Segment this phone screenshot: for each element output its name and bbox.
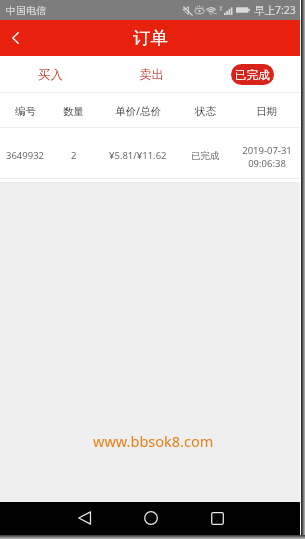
staticText: 买入 [38, 67, 63, 83]
staticText: 早上7:23 [254, 3, 296, 17]
button[interactable]: Back [0, 20, 30, 56]
button[interactable]: Home [137, 504, 165, 532]
button[interactable]: 3649932 [0, 128, 300, 182]
staticText: www.bbsok8.com [93, 431, 214, 451]
staticText: ¥5.81/¥11.62 [109, 149, 167, 162]
staticText: 2019-07-31 09:06:38 [242, 144, 292, 170]
staticText: 数量 [63, 105, 84, 118]
button[interactable]: Back [70, 504, 98, 532]
staticText: 编号 [15, 105, 36, 118]
staticText: 中国电信 [6, 4, 46, 17]
staticText: 状态 [195, 105, 216, 118]
staticText: 订单 [133, 27, 168, 49]
staticText: 日期 [256, 105, 277, 118]
staticText: 已完成 [191, 150, 220, 162]
button[interactable]: Recent apps [203, 504, 231, 532]
staticText: 单价/总价 [115, 104, 161, 118]
staticText: 3649932 [6, 149, 45, 162]
staticText: 2 [71, 149, 77, 162]
staticText: 已完成 [235, 68, 270, 82]
button[interactable]: 已完成 [231, 64, 274, 85]
button[interactable]: 买入 [30, 59, 71, 91]
button[interactable]: 卖出 [131, 59, 172, 91]
staticText: 卖出 [139, 67, 164, 83]
